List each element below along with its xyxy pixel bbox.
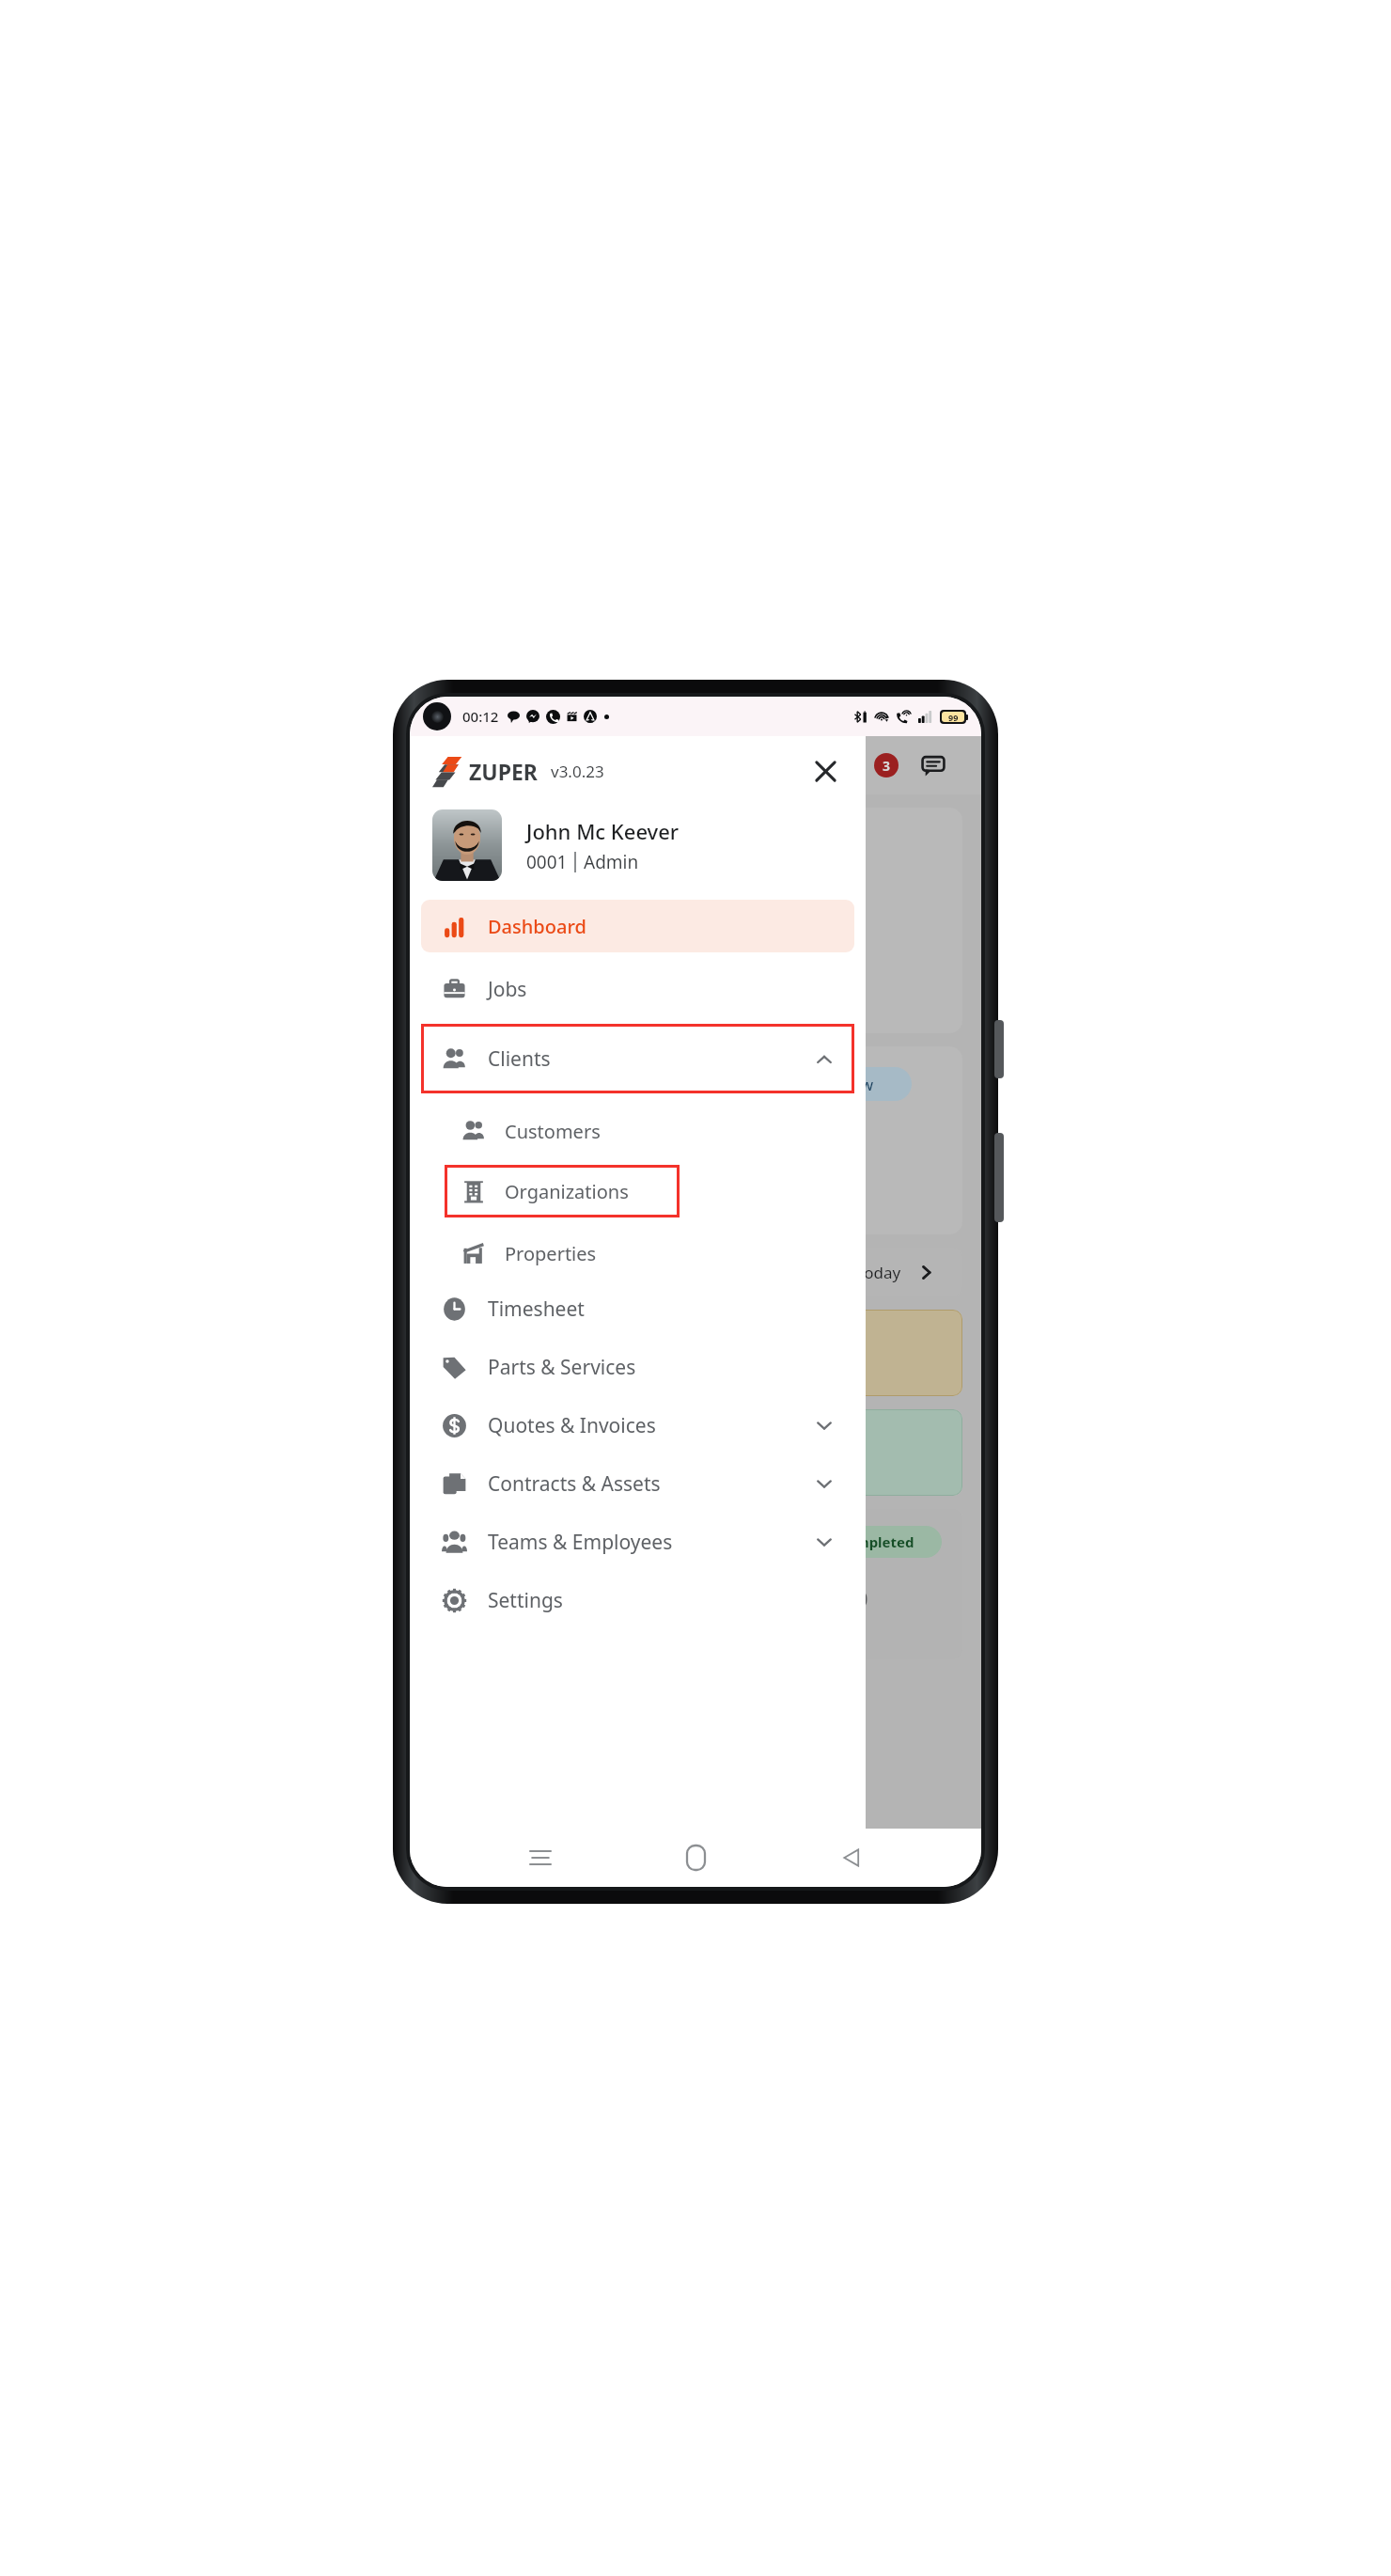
button[interactable]: Close xyxy=(805,751,845,791)
staticText: Admin xyxy=(584,850,639,874)
staticText: View xyxy=(838,1074,874,1095)
staticText: ZUPER xyxy=(469,757,538,786)
staticText: Properties xyxy=(505,1241,597,1266)
button[interactable]: Quotes & Invoices xyxy=(442,1404,834,1447)
staticText: Clients xyxy=(488,1045,551,1073)
button[interactable]: View xyxy=(801,1067,912,1101)
staticText: Completed xyxy=(837,1532,914,1551)
button[interactable]: Clients xyxy=(421,1024,854,1093)
staticText: 99 xyxy=(948,712,959,722)
staticText: Contracts & Assets xyxy=(488,1470,661,1498)
button[interactable]: Contracts & Assets xyxy=(442,1462,834,1505)
button[interactable]: John Mc Keever xyxy=(432,809,866,881)
button[interactable]: Dashboard xyxy=(421,900,854,952)
staticText: Customers xyxy=(505,1119,601,1144)
staticText: Settings xyxy=(488,1587,563,1614)
button[interactable]: Organizations xyxy=(445,1165,680,1217)
staticText: 0 xyxy=(856,1584,868,1612)
staticText: 0001 xyxy=(526,850,568,874)
button[interactable]: Messages xyxy=(919,751,947,779)
button[interactable]: Parts & Services xyxy=(442,1345,834,1389)
staticText: Today xyxy=(856,1262,901,1283)
button[interactable]: Recents xyxy=(515,1832,566,1883)
button[interactable]: Customers xyxy=(461,1107,866,1155)
button[interactable]: Back xyxy=(826,1832,877,1883)
staticText: Parts & Services xyxy=(488,1354,636,1381)
staticText: Dashboard xyxy=(488,914,586,939)
staticText: Teams & Employees xyxy=(488,1529,673,1556)
staticText: Jobs xyxy=(488,976,527,1003)
staticText: Quotes & Invoices xyxy=(488,1412,656,1439)
button[interactable]: Jobs xyxy=(442,967,834,1011)
button[interactable]: Settings xyxy=(442,1579,834,1622)
button[interactable]: Home xyxy=(670,1832,721,1883)
staticText: Organizations xyxy=(505,1179,629,1204)
staticText: 3 xyxy=(883,757,891,775)
button[interactable]: Teams & Employees xyxy=(442,1520,834,1563)
staticText: John Mc Keever xyxy=(526,817,680,845)
staticText: v3.0.23 xyxy=(551,761,604,782)
button[interactable]: Timesheet xyxy=(442,1287,834,1330)
staticText: 00:12 xyxy=(462,707,499,726)
button[interactable]: Today xyxy=(429,1248,962,1296)
button[interactable]: Properties xyxy=(461,1229,866,1278)
staticText: Timesheet xyxy=(488,1296,585,1323)
